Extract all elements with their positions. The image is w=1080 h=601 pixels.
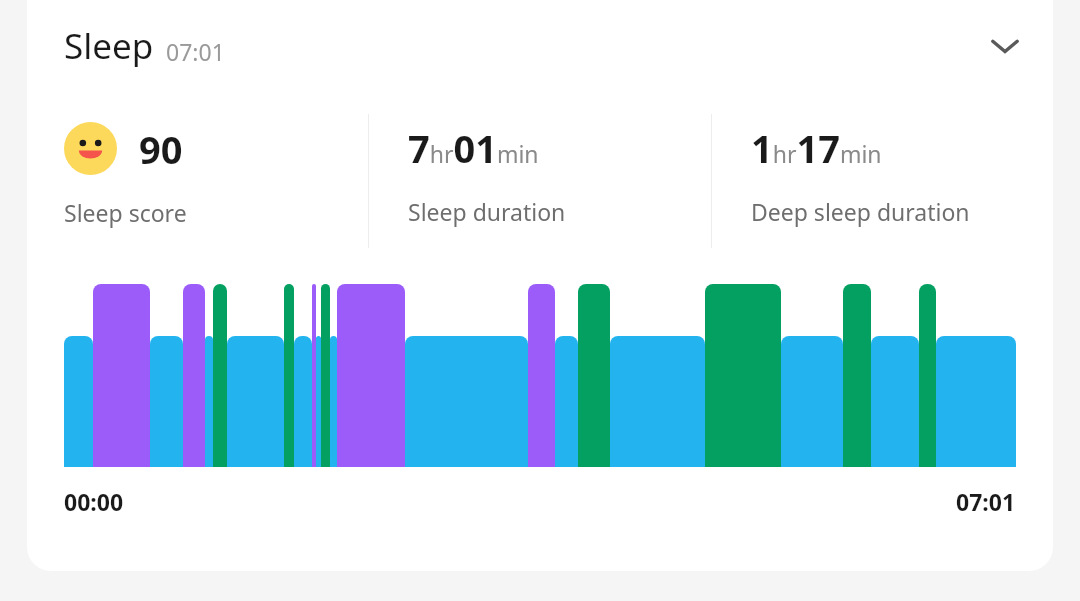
button[interactable]: 1hr17min <box>751 122 991 227</box>
button[interactable] <box>27 270 1053 486</box>
staticText: Sleep <box>64 22 154 70</box>
button[interactable]: 90 <box>64 122 368 228</box>
staticText: Deep sleep duration <box>751 196 970 227</box>
button[interactable]: 7hr01min <box>408 122 724 227</box>
staticText: 1hr17min <box>751 122 882 174</box>
staticText: 07:01 <box>956 486 1016 517</box>
staticText: Sleep duration <box>408 196 566 227</box>
staticText: 07:01 <box>166 36 225 67</box>
staticText: 90 <box>139 123 183 175</box>
staticText: 7hr01min <box>408 122 539 174</box>
staticText: 00:00 <box>64 486 124 517</box>
staticText: Sleep score <box>64 197 187 228</box>
button[interactable]: Sleep <box>27 0 1053 92</box>
button[interactable]: Collapse <box>973 14 1037 78</box>
